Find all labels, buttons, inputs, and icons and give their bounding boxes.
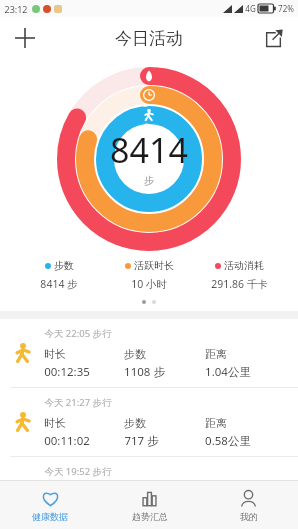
button[interactable]: 今天 21:27 步行 [0, 388, 298, 456]
staticText: 步数 [54, 259, 74, 272]
staticText: 23:12 [4, 3, 28, 15]
staticText: 00:12:35 [44, 364, 90, 380]
staticText: 步数 [124, 416, 146, 430]
staticText: 4G [245, 3, 256, 14]
staticText: 8414 步 [40, 277, 78, 291]
button[interactable]: 活跃时长 [104, 259, 194, 291]
staticText: 1108 步 [124, 364, 165, 380]
button[interactable]: 活动消耗 [194, 259, 284, 291]
staticText: 距离 [205, 416, 227, 430]
staticText: 0.58公里 [205, 433, 251, 449]
staticText: 10 小时 [131, 277, 167, 291]
staticText: 今天 21:27 步行 [44, 396, 112, 409]
button[interactable]: 今天 22:05 步行 [0, 319, 298, 387]
button[interactable]: Add [8, 21, 42, 55]
staticText: 时长 [44, 347, 66, 361]
staticText: 步 [144, 174, 154, 187]
staticText: 今天 19:52 步行 [44, 465, 112, 478]
staticText: 活跃时长 [134, 259, 174, 272]
button[interactable]: 健康数据 [0, 481, 100, 529]
button[interactable]: Share [256, 21, 290, 55]
button[interactable]: 我的 [199, 481, 298, 529]
staticText: 步数 [124, 347, 146, 361]
staticText: 1.04公里 [205, 364, 251, 380]
staticText: 时长 [44, 416, 66, 430]
staticText: 活动消耗 [224, 259, 264, 272]
button[interactable]: 步数 [14, 259, 104, 291]
staticText: 717 步 [124, 433, 159, 449]
button[interactable]: 趋势汇总 [100, 481, 199, 529]
button[interactable]: 今天 19:52 步行 [0, 457, 298, 480]
staticText: 今天 22:05 步行 [44, 327, 112, 340]
staticText: 健康数据 [32, 511, 68, 522]
staticText: 距离 [205, 347, 227, 361]
staticText: 我的 [240, 511, 258, 522]
staticText: 今日活动 [115, 28, 183, 49]
staticText: 72% [278, 3, 294, 14]
staticText: 291.86 千卡 [211, 277, 268, 291]
staticText: 8414 [110, 127, 188, 173]
staticText: 00:11:02 [44, 433, 90, 449]
staticText: 趋势汇总 [132, 511, 168, 522]
